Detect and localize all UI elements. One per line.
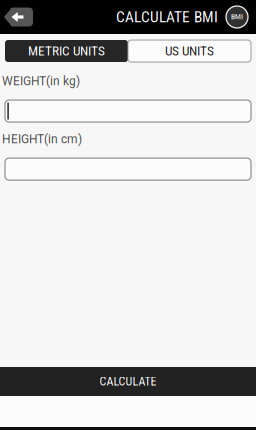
staticText: BMI: [231, 13, 243, 21]
staticText: CALCULATE: [99, 374, 156, 389]
button[interactable]: BMI info: [224, 4, 250, 30]
staticText: CALCULATE BMI: [116, 8, 218, 26]
button[interactable]: Back: [3, 3, 34, 31]
button[interactable]: US UNITS: [128, 40, 251, 62]
button[interactable]: Height in centimetres: [5, 158, 251, 180]
button[interactable]: Weight in kilograms: [5, 100, 251, 122]
button[interactable]: CALCULATE: [0, 367, 256, 396]
staticText: HEIGHT(in cm): [2, 132, 82, 146]
staticText: WEIGHT(in kg): [2, 74, 80, 88]
staticText: METRIC UNITS: [28, 43, 105, 59]
staticText: US UNITS: [165, 43, 214, 59]
button[interactable]: METRIC UNITS: [5, 40, 128, 62]
